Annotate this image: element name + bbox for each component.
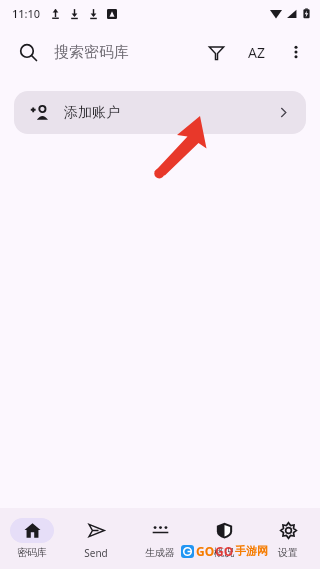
staticText: 搜索密码库 [54, 43, 129, 62]
button[interactable]: 概况 [192, 508, 256, 569]
staticText: AZ [248, 43, 265, 62]
staticText: 密码库 [17, 546, 47, 559]
button[interactable]: 设置 [256, 508, 320, 569]
staticText: 生成器 [145, 546, 175, 559]
button[interactable]: Sort A to Z [236, 32, 276, 72]
button[interactable]: 密码库 [0, 508, 64, 569]
staticText: 设置 [278, 546, 298, 559]
button[interactable]: Filter [196, 32, 236, 72]
button[interactable]: 生成器 [128, 508, 192, 569]
button[interactable]: Search [8, 32, 48, 72]
button[interactable]: Send [64, 508, 128, 569]
staticText: 概况 [214, 546, 234, 559]
staticText: GO [196, 543, 215, 559]
staticText: 11:10 [12, 6, 41, 21]
staticText: GO [215, 543, 234, 559]
staticText: 添加账户 [64, 104, 120, 122]
staticText: 手游网 [235, 544, 268, 558]
button[interactable]: More options [276, 32, 316, 72]
staticText: Send [84, 546, 108, 560]
button[interactable]: 添加账户 [14, 91, 306, 134]
